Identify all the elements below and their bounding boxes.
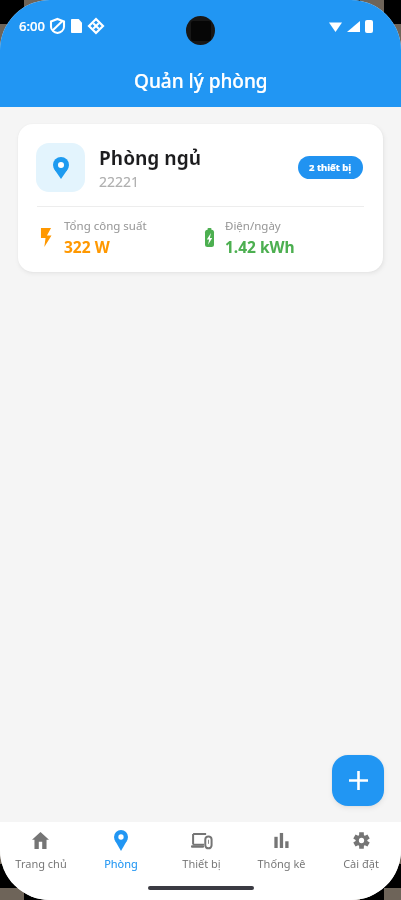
button[interactable]: Phòng ngủ (18, 124, 383, 272)
staticText: 322 W (64, 236, 110, 257)
staticText: Thống kê (257, 856, 306, 871)
staticText: Điện/ngày (225, 218, 281, 234)
staticText: 2 thiết bị (309, 161, 352, 174)
button[interactable]: Thống kê (241, 824, 321, 871)
staticText: Phòng (104, 856, 138, 871)
staticText: Cài đặt (343, 856, 379, 871)
staticText: 22221 (99, 172, 140, 191)
button[interactable]: Thiết bị (161, 824, 241, 871)
button[interactable]: Cài đặt (321, 824, 401, 871)
staticText: Thiết bị (182, 856, 221, 871)
button[interactable]: Thêm phòng (332, 755, 384, 806)
staticText: Tổng công suất (64, 218, 147, 234)
button[interactable]: Trang chủ (0, 824, 81, 871)
staticText: 1.42 kWh (225, 236, 295, 257)
button[interactable]: 2 thiết bị (298, 156, 363, 179)
staticText: Quản lý phòng (134, 68, 268, 94)
staticText: 6:00 (19, 17, 45, 35)
staticText: Phòng ngủ (99, 145, 202, 171)
button[interactable]: Phòng (81, 824, 161, 871)
staticText: Trang chủ (15, 856, 67, 871)
